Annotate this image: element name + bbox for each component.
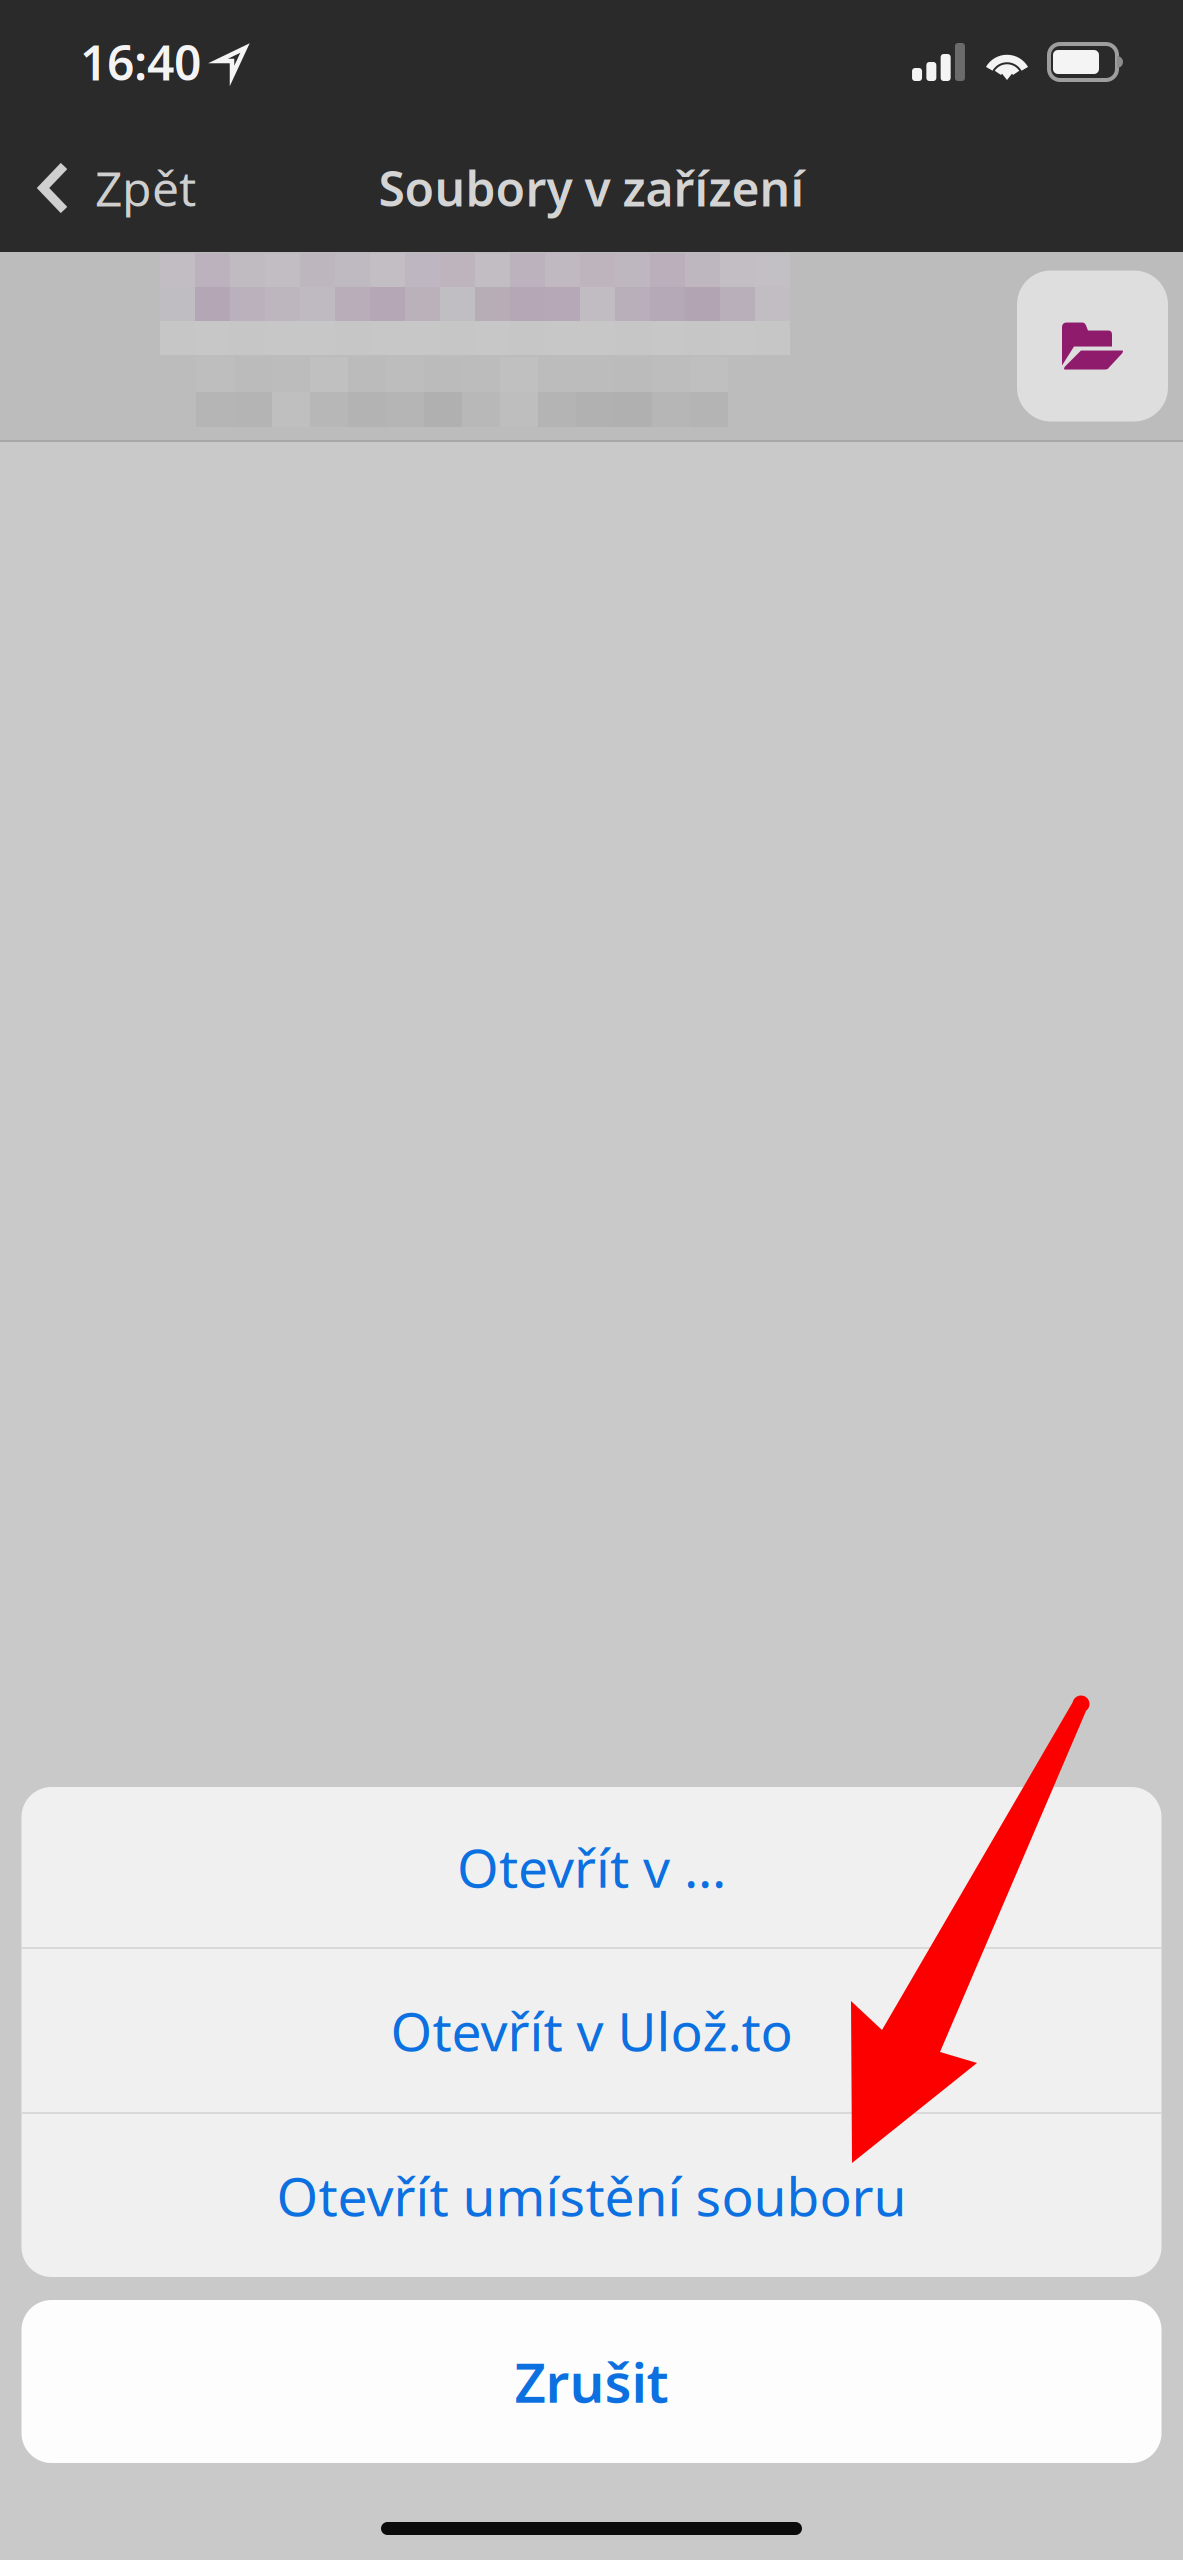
button[interactable]: Otevřít v ...	[21, 1787, 1161, 1947]
staticText: Otevřít v ...	[457, 1832, 726, 1902]
staticText: Otevřít v Ulož.to	[390, 1995, 792, 2066]
button[interactable]: Otevřít umístění souboru	[21, 2114, 1161, 2277]
staticText: Soubory v zařízení	[378, 156, 804, 220]
button[interactable]: Zrušit	[21, 2300, 1161, 2463]
staticText: 16:40	[80, 30, 201, 94]
button[interactable]: Otevřít v Ulož.to	[21, 1949, 1161, 2112]
staticText: Zrušit	[514, 2345, 668, 2418]
staticText: Zpět	[95, 156, 196, 220]
button[interactable]: Otevřít složku	[1017, 270, 1168, 421]
button[interactable]: Zpět	[0, 124, 216, 252]
staticText: Otevřít umístění souboru	[276, 2160, 906, 2231]
